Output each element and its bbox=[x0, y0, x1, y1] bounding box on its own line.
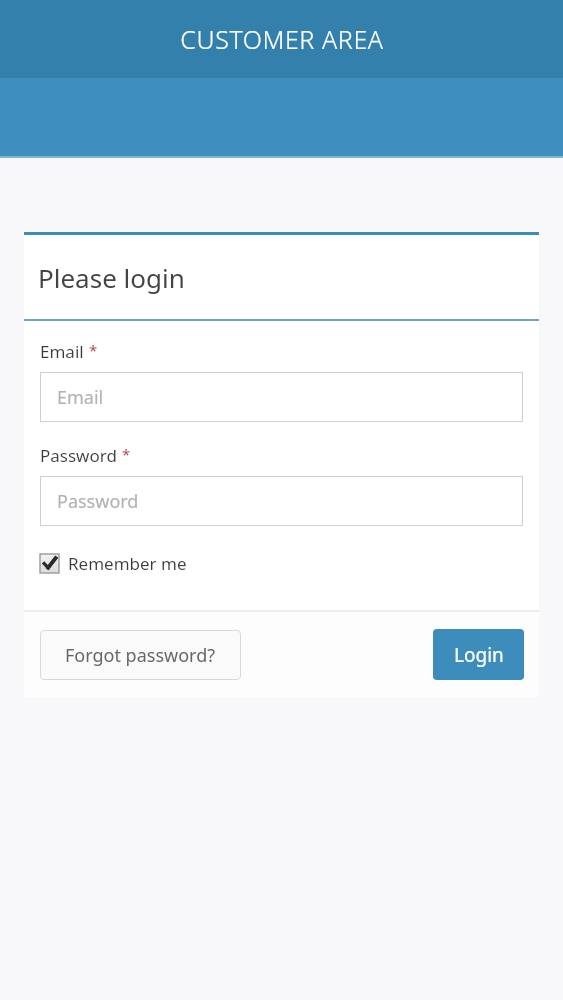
staticText: * bbox=[89, 340, 98, 360]
button[interactable]: Password bbox=[40, 476, 523, 526]
staticText: Email bbox=[40, 340, 84, 363]
staticText: Password bbox=[40, 444, 117, 467]
button[interactable]: Forgot password? bbox=[40, 630, 241, 680]
button[interactable]: Email bbox=[40, 372, 523, 422]
staticText: CUSTOMER AREA bbox=[180, 22, 384, 56]
staticText: Login bbox=[454, 642, 504, 668]
button[interactable]: Login bbox=[433, 629, 524, 680]
staticText: Email bbox=[57, 385, 104, 410]
other: Remember me checkbox bbox=[40, 554, 59, 573]
staticText: * bbox=[122, 444, 131, 464]
staticText: Please login bbox=[38, 260, 185, 295]
staticText: Password bbox=[57, 489, 139, 514]
staticText: Remember me bbox=[68, 552, 187, 575]
button[interactable]: Remember me checkbox bbox=[40, 552, 193, 575]
staticText: Forgot password? bbox=[65, 643, 216, 668]
